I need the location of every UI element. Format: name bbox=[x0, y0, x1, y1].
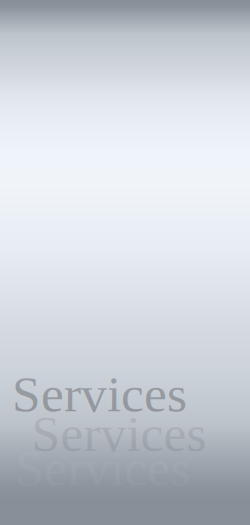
staticText: Services bbox=[15, 439, 190, 496]
staticText: Services bbox=[12, 365, 187, 422]
staticText: Services bbox=[31, 405, 206, 462]
